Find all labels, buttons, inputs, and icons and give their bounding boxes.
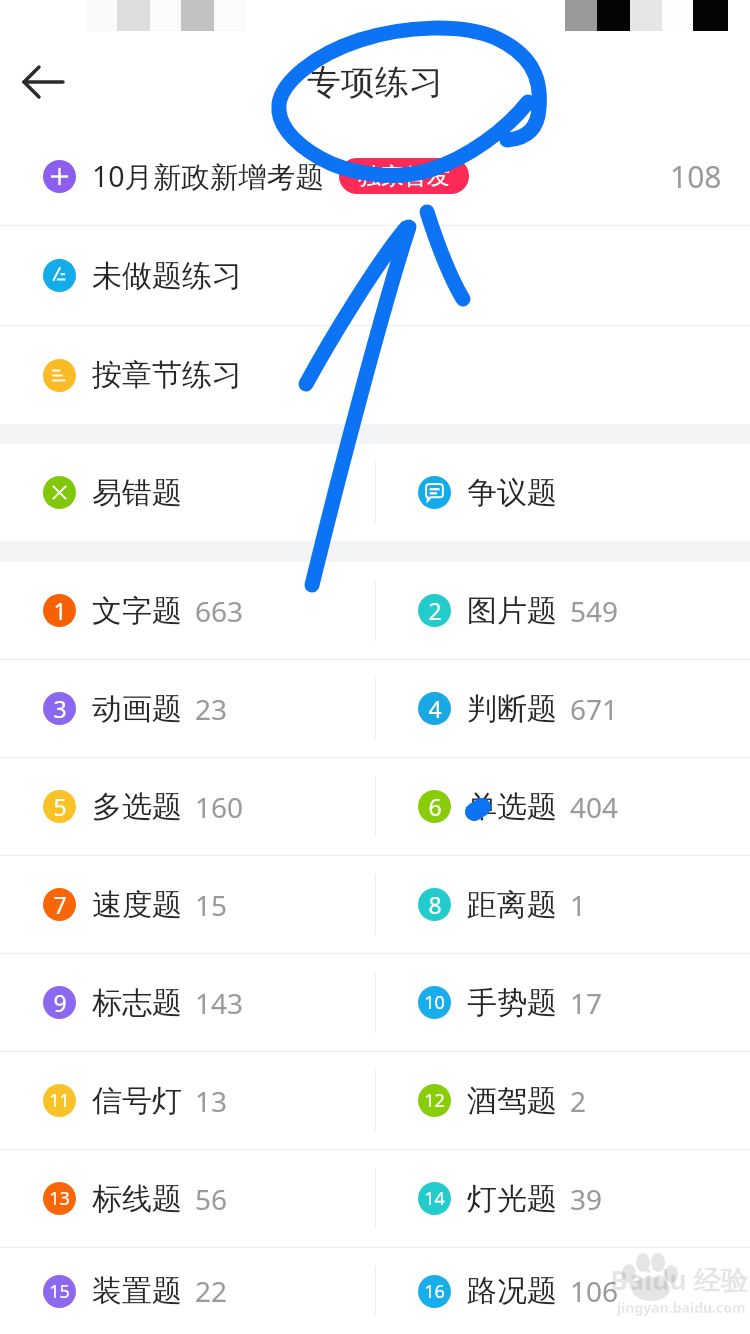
staticText: 标线题 xyxy=(92,1180,182,1218)
staticText: 15 xyxy=(49,1279,70,1304)
button[interactable]: 10 xyxy=(375,954,750,1051)
staticText: 单选题 xyxy=(467,788,557,826)
staticText: 标志题 xyxy=(92,984,182,1022)
button[interactable]: 3 xyxy=(0,660,375,757)
staticText: 4 xyxy=(428,693,442,724)
staticText: 10 xyxy=(424,990,445,1015)
staticText: 22 xyxy=(195,1272,228,1310)
staticText: 未做题练习 xyxy=(92,257,242,295)
button[interactable]: 8 xyxy=(375,856,750,953)
staticText: 17 xyxy=(570,984,603,1022)
staticText: 14 xyxy=(424,1186,445,1211)
staticText: 装置题 xyxy=(92,1272,182,1310)
staticText: 16 xyxy=(424,1279,445,1304)
staticText: 争议题 xyxy=(467,474,557,512)
staticText: 独家首发 xyxy=(358,162,450,191)
staticText: 549 xyxy=(570,592,619,630)
button[interactable]: 2 xyxy=(375,562,750,659)
button[interactable]: 10月新政新增考题 xyxy=(0,127,750,225)
button[interactable]: 易错题 xyxy=(0,444,375,541)
button[interactable]: 7 xyxy=(0,856,375,953)
staticText: 13 xyxy=(195,1082,228,1120)
staticText: 专项练习 xyxy=(307,61,443,104)
staticText: 23 xyxy=(195,690,228,728)
staticText: 文字题 xyxy=(92,592,182,630)
staticText: 速度题 xyxy=(92,886,182,924)
staticText: 404 xyxy=(570,788,619,826)
staticText: 108 xyxy=(670,156,722,197)
button[interactable]: 5 xyxy=(0,758,375,855)
staticText: 10月新政新增考题 xyxy=(92,157,325,196)
staticText: 2 xyxy=(570,1082,587,1120)
staticText: 3 xyxy=(53,693,67,724)
staticText: 9 xyxy=(53,987,67,1018)
staticText: 酒驾题 xyxy=(467,1082,557,1120)
staticText: 1 xyxy=(570,886,587,924)
staticText: 8 xyxy=(428,889,442,920)
button[interactable]: 9 xyxy=(0,954,375,1051)
button[interactable]: 争议题 xyxy=(375,444,750,541)
button[interactable]: 1 xyxy=(0,562,375,659)
staticText: 106 xyxy=(570,1272,619,1310)
staticText: Baidu 经验 xyxy=(610,1261,748,1298)
staticText: 易错题 xyxy=(92,474,182,512)
button[interactable]: 16 xyxy=(375,1248,750,1334)
staticText: 多选题 xyxy=(92,788,182,826)
staticText: 按章节练习 xyxy=(92,356,242,394)
button[interactable]: 15 xyxy=(0,1248,375,1334)
staticText: 39 xyxy=(570,1180,603,1218)
staticText: 15 xyxy=(195,886,228,924)
staticText: 手势题 xyxy=(467,984,557,1022)
staticText: 56 xyxy=(195,1180,228,1218)
staticText: 图片题 xyxy=(467,592,557,630)
button[interactable]: Back xyxy=(0,31,88,119)
staticText: 距离题 xyxy=(467,886,557,924)
button[interactable]: 11 xyxy=(0,1052,375,1149)
staticText: 1 xyxy=(53,595,67,626)
staticText: 160 xyxy=(195,788,244,826)
staticText: 663 xyxy=(195,592,244,630)
staticText: 判断题 xyxy=(467,690,557,728)
staticText: 路况题 xyxy=(467,1272,557,1310)
staticText: 11 xyxy=(49,1088,70,1113)
staticText: 143 xyxy=(195,984,244,1022)
staticText: 信号灯 xyxy=(92,1082,182,1120)
button[interactable]: 未做题练习 xyxy=(0,226,750,325)
staticText: 6 xyxy=(428,791,442,822)
button[interactable]: 12 xyxy=(375,1052,750,1149)
staticText: 动画题 xyxy=(92,690,182,728)
button[interactable]: 6 xyxy=(375,758,750,855)
staticText: 7 xyxy=(53,889,67,920)
staticText: jingyan.baidu.com xyxy=(617,1298,746,1317)
button[interactable]: 4 xyxy=(375,660,750,757)
button[interactable]: 14 xyxy=(375,1150,750,1247)
staticText: 671 xyxy=(570,690,619,728)
staticText: 12 xyxy=(424,1088,445,1113)
staticText: 2 xyxy=(428,595,442,626)
staticText: 灯光题 xyxy=(467,1180,557,1218)
staticText: 13 xyxy=(49,1186,70,1211)
button[interactable]: 13 xyxy=(0,1150,375,1247)
staticText: 5 xyxy=(53,791,67,822)
button[interactable]: 按章节练习 xyxy=(0,326,750,424)
